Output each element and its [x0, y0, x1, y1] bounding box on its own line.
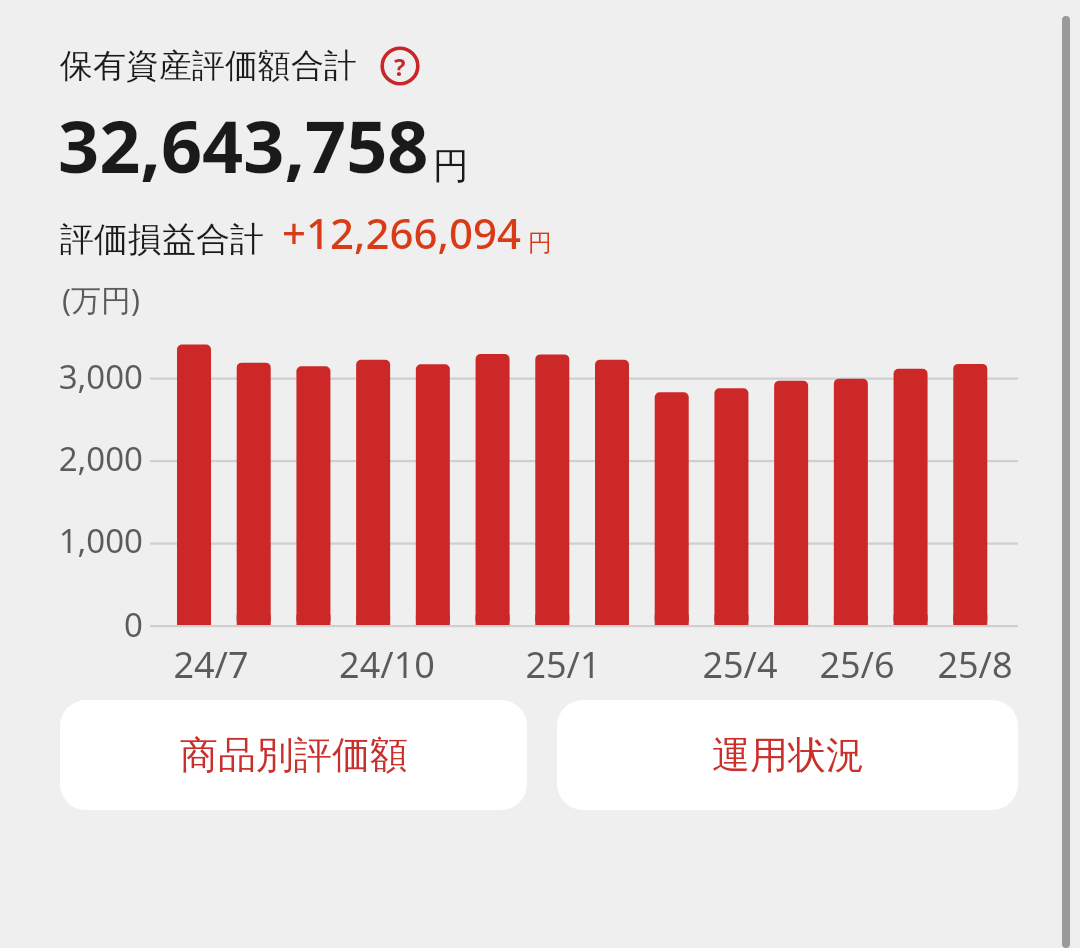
- staticText: 3,000: [58, 354, 143, 399]
- staticText: ?: [394, 50, 406, 83]
- staticText: 32,643,758: [58, 96, 429, 194]
- staticText: 25/1: [525, 640, 601, 689]
- staticText: 2,000: [58, 436, 143, 481]
- staticText: 24/7: [173, 640, 249, 689]
- button[interactable]: ヘルプ: [378, 44, 422, 88]
- staticText: 25/4: [702, 640, 778, 689]
- staticText: 0: [124, 602, 143, 647]
- staticText: 運用状況: [712, 731, 864, 779]
- button[interactable]: 商品別評価額: [60, 700, 527, 810]
- staticText: 25/6: [819, 640, 895, 689]
- staticText: 評価損益合計: [60, 218, 264, 261]
- staticText: 商品別評価額: [180, 731, 408, 779]
- staticText: 保有資産評価額合計: [60, 45, 357, 87]
- staticText: 24/10: [339, 640, 435, 689]
- button[interactable]: 運用状況: [557, 700, 1018, 810]
- staticText: 円: [433, 143, 469, 188]
- staticText: 円: [528, 228, 552, 258]
- staticText: 25/8: [937, 640, 1013, 689]
- button[interactable]: 保有資産評価額合計: [60, 44, 422, 88]
- staticText: 1,000: [58, 518, 143, 563]
- staticText: (万円): [62, 279, 140, 320]
- staticText: +12,266,094: [282, 204, 522, 261]
